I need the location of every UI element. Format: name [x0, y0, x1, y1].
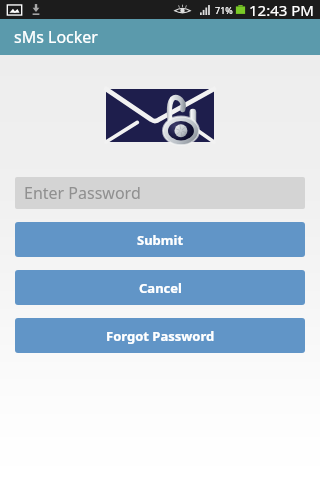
staticText: Cancel — [139, 279, 182, 297]
staticText: Forgot Password — [106, 327, 215, 345]
other: Battery 71 percent — [235, 4, 246, 15]
other: Locked message envelope — [106, 89, 214, 142]
button[interactable]: Enter Password — [15, 177, 305, 209]
staticText: 71% — [215, 4, 233, 16]
other: Signal strength — [200, 5, 211, 15]
button[interactable]: sMs Locker — [0, 19, 320, 55]
button[interactable]: Submit — [15, 222, 305, 257]
other: Download complete — [31, 3, 41, 16]
staticText: sMs Locker — [14, 26, 98, 48]
other: Smart stay — [174, 4, 191, 15]
staticText: Submit — [137, 231, 184, 249]
staticText: 12:43 PM — [249, 0, 314, 19]
staticText: Enter Password — [24, 182, 141, 204]
button[interactable]: Cancel — [15, 270, 305, 305]
button[interactable]: Forgot Password — [15, 318, 305, 353]
other: Screenshot captured — [7, 4, 22, 16]
